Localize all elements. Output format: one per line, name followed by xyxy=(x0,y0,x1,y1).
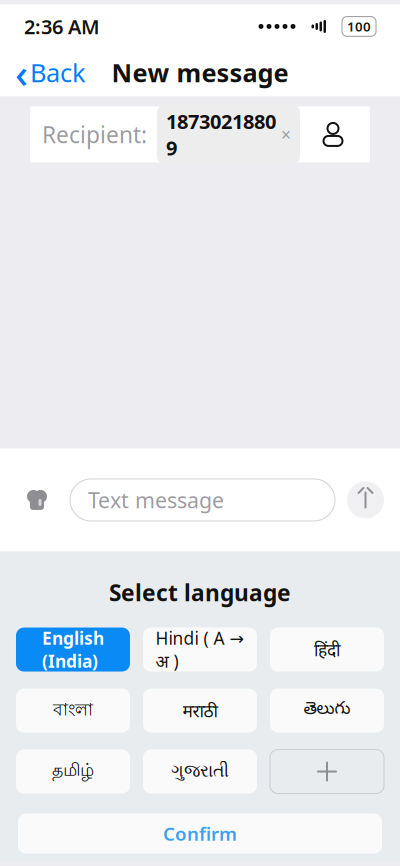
button[interactable]: Choose contact xyxy=(314,112,352,156)
staticText: 100 xyxy=(347,18,371,35)
staticText: Select language xyxy=(109,577,291,607)
staticText: 18730218809 xyxy=(166,108,276,161)
button[interactable]: தமிழ் xyxy=(16,750,130,794)
staticText: New message xyxy=(111,56,288,89)
staticText: Hindi ( A → अ ) xyxy=(155,626,244,672)
staticText: 2:36 AM xyxy=(24,13,100,40)
staticText: Recipient: xyxy=(42,119,147,149)
staticText: मराठी xyxy=(182,699,217,722)
button[interactable]: Add language xyxy=(270,750,384,794)
button[interactable]: English (India) xyxy=(16,628,130,672)
staticText: ગુજરાતી xyxy=(171,763,229,780)
button[interactable]: Stickers xyxy=(14,478,60,522)
button[interactable]: Text message xyxy=(70,479,335,521)
button[interactable]: हिंदी xyxy=(270,628,384,672)
button[interactable]: ‹ xyxy=(0,50,101,94)
staticText: Text message xyxy=(88,486,224,514)
button[interactable]: ગુજરાતી xyxy=(143,750,257,794)
button[interactable]: বাংলা xyxy=(16,689,130,733)
button[interactable]: తెలుగు xyxy=(270,689,384,733)
staticText: ‹ xyxy=(15,46,28,99)
staticText: Back xyxy=(30,56,86,89)
staticText: বাংলা xyxy=(53,699,93,722)
button[interactable]: Hindi ( A → अ ) xyxy=(143,628,257,672)
button[interactable]: मराठी xyxy=(143,689,257,733)
staticText: English (India) xyxy=(42,626,104,672)
staticText: × xyxy=(281,123,291,146)
staticText: தமிழ் xyxy=(52,761,94,782)
button[interactable]: Send xyxy=(347,481,384,518)
staticText: తెలుగు xyxy=(303,699,350,722)
button[interactable]: Confirm xyxy=(18,814,382,854)
staticText: हिंदी xyxy=(314,638,340,661)
staticText: Confirm xyxy=(163,821,237,846)
